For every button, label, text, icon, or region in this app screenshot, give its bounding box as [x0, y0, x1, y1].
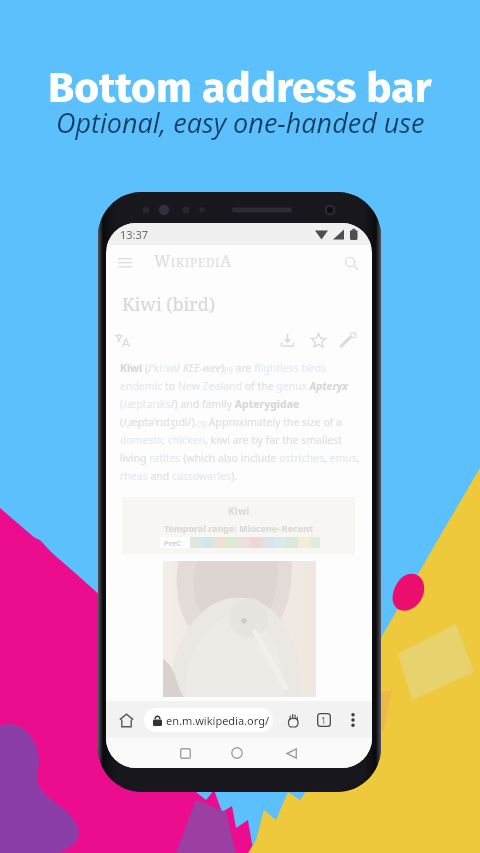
button[interactable]: More options: [340, 707, 366, 733]
button[interactable]: Search Wikipedia: [339, 251, 363, 275]
staticText: en.m.wikipedia.org/v: [166, 713, 273, 728]
button[interactable]: Home: [222, 738, 252, 768]
button[interactable]: Open navigation menu: [114, 252, 136, 274]
staticText: WIKIPEDIA: [154, 250, 232, 271]
button[interactable]: Add to watchlist: [305, 327, 331, 353]
staticText: 1: [321, 714, 327, 726]
button[interactable]: Switch tabs, 1 open: [311, 707, 337, 733]
button[interactable]: Back: [276, 738, 306, 768]
staticText: Kiwi (bird): [122, 292, 216, 317]
staticText: Bottom address bar: [48, 62, 432, 113]
staticText: rheas and cassowaries).: [120, 469, 238, 483]
staticText: (/æptərɪks/) and family Apterygidae: [120, 397, 300, 411]
button[interactable]: Reader mode: [280, 707, 306, 733]
staticText: living ratites (which also include ostri…: [120, 451, 360, 465]
button[interactable]: Home: [113, 707, 139, 733]
staticText: 13:37: [120, 227, 149, 242]
staticText: Kiwi: [228, 504, 250, 518]
staticText: endemic to New Zealand of the genus Apte…: [120, 379, 348, 393]
staticText: PreC: [164, 538, 182, 548]
button[interactable]: en.m.wikipedia.org/v: [144, 708, 273, 732]
staticText: Kiwi (/ˈkiːwi/ KEE-wee)[4] are flightles…: [120, 361, 327, 375]
button[interactable]: Edit article: [335, 327, 361, 353]
staticText: Optional, easy one-handed use: [56, 104, 425, 141]
staticText: domestic chicken, kiwi are by far the sm…: [120, 433, 343, 447]
button[interactable]: Change language: [109, 327, 135, 353]
staticText: (/ˌæptəˈrɪdʒɪdi/).[5] Approximately the …: [120, 415, 342, 429]
staticText: Temporal range: Miocene–Recent: [164, 522, 313, 534]
button[interactable]: Save for offline reading: [274, 327, 300, 353]
button[interactable]: Recent apps: [170, 738, 200, 768]
